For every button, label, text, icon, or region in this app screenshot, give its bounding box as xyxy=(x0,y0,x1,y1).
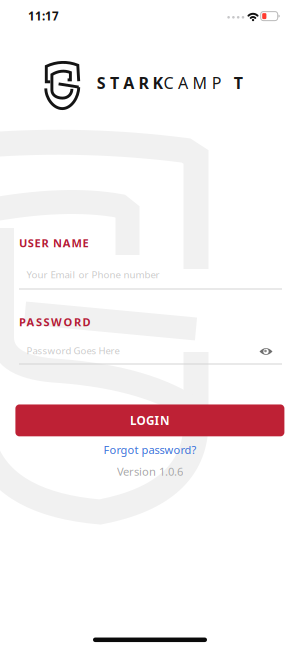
button[interactable]: LOGIN xyxy=(15,404,284,436)
staticText: R xyxy=(138,72,148,94)
button[interactable]: Password Goes Here xyxy=(19,332,282,372)
staticText: K xyxy=(153,72,164,94)
staticText: P xyxy=(212,72,222,94)
staticText: PASSWORD xyxy=(19,314,90,330)
staticText: LOGIN xyxy=(130,412,170,428)
staticText: M xyxy=(192,72,207,94)
staticText: Your Email or Phone number xyxy=(26,268,159,281)
staticText: C xyxy=(164,72,174,94)
button[interactable]: Forgot password? xyxy=(103,442,196,457)
staticText: A xyxy=(123,72,134,94)
staticText: S xyxy=(97,72,106,94)
button[interactable]: Show password xyxy=(255,342,277,360)
staticText: Password Goes Here xyxy=(26,344,119,357)
staticText: USER NAME xyxy=(19,235,88,251)
staticText: Version 1.0.6 xyxy=(117,464,183,479)
staticText: A xyxy=(178,72,188,94)
button[interactable]: Your Email or Phone number xyxy=(19,256,282,296)
staticText: T xyxy=(234,72,243,94)
staticText: 11:17 xyxy=(28,8,59,24)
staticText: Forgot password? xyxy=(103,442,196,457)
staticText: T xyxy=(110,72,119,94)
